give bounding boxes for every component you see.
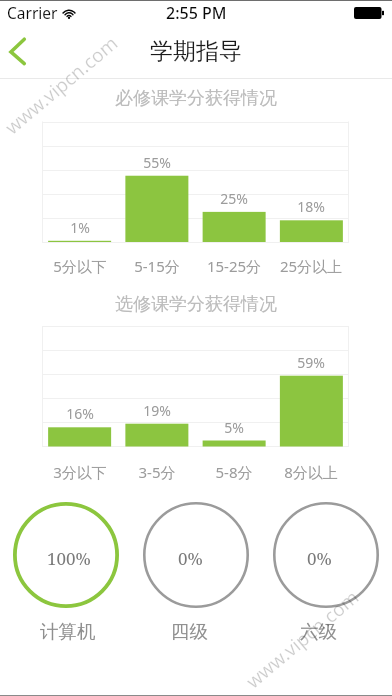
staticText: 必修课学分获得情况 bbox=[0, 87, 392, 110]
staticText: www.vipcn.com bbox=[240, 584, 364, 694]
staticText: 计算机 bbox=[40, 620, 96, 643]
staticText: www.vipcn.com bbox=[0, 30, 123, 140]
staticText: 学期指导 bbox=[0, 37, 392, 66]
staticText: 8分以上 bbox=[266, 462, 356, 482]
staticText: 100% bbox=[47, 547, 91, 570]
staticText: 15-25分 bbox=[189, 256, 279, 276]
staticText: 六级 bbox=[300, 620, 337, 643]
staticText: 选修课学分获得情况 bbox=[0, 293, 392, 316]
staticText: 5% bbox=[194, 418, 274, 437]
staticText: 25分以上 bbox=[266, 256, 356, 276]
staticText: 18% bbox=[271, 197, 351, 216]
staticText: 2:55 PM bbox=[166, 2, 227, 24]
button[interactable]: Back bbox=[0, 25, 56, 79]
button[interactable] bbox=[273, 502, 379, 608]
button[interactable] bbox=[143, 502, 249, 608]
button[interactable] bbox=[13, 502, 119, 608]
staticText: Carrier bbox=[7, 2, 58, 23]
staticText: 25% bbox=[194, 189, 274, 208]
staticText: 3-5分 bbox=[112, 462, 202, 482]
staticText: 0% bbox=[307, 547, 332, 570]
staticText: 四级 bbox=[171, 620, 208, 643]
staticText: 1% bbox=[40, 218, 120, 237]
staticText: 0% bbox=[178, 547, 203, 570]
staticText: 5-15分 bbox=[112, 256, 202, 276]
staticText: 5-8分 bbox=[189, 462, 279, 482]
staticText: 16% bbox=[40, 404, 120, 423]
staticText: 5分以下 bbox=[35, 256, 125, 276]
staticText: 59% bbox=[271, 353, 351, 372]
staticText: 3分以下 bbox=[35, 462, 125, 482]
staticText: 19% bbox=[117, 401, 197, 420]
staticText: 55% bbox=[117, 153, 197, 172]
